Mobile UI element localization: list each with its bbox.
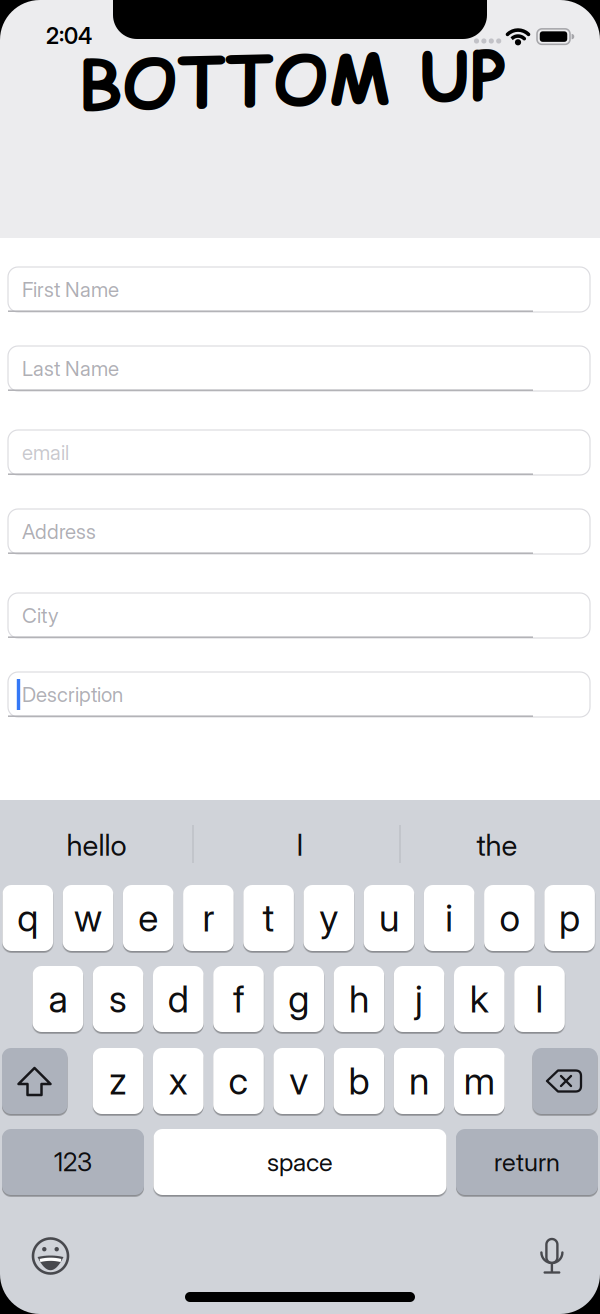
staticText: r [202, 895, 214, 941]
button[interactable]: l [514, 966, 565, 1032]
staticText: v [289, 1058, 308, 1104]
staticText: x [169, 1058, 188, 1104]
staticText: email [22, 440, 69, 465]
staticText: 2:04 [46, 23, 92, 49]
staticText: g [288, 976, 309, 1022]
staticText: j [415, 976, 423, 1022]
staticText: I [296, 827, 303, 863]
button[interactable]: f [213, 966, 264, 1032]
button[interactable]: u [364, 885, 414, 951]
button[interactable]: w [63, 885, 113, 951]
staticText: u [379, 895, 399, 941]
button[interactable]: City [8, 593, 590, 638]
button[interactable]: y [303, 885, 354, 951]
staticText: 123 [54, 1147, 92, 1177]
button[interactable]: Emoji [25, 1230, 76, 1281]
button[interactable]: p [544, 885, 595, 951]
staticText: c [228, 1058, 248, 1104]
button[interactable]: Last Name [8, 346, 590, 391]
button[interactable]: d [153, 966, 204, 1032]
staticText: a [48, 976, 67, 1022]
button[interactable]: Delete [532, 1048, 597, 1114]
staticText: City [22, 603, 59, 628]
staticText: h [349, 976, 369, 1022]
staticText: q [17, 895, 38, 941]
button[interactable]: Shift [2, 1048, 67, 1114]
staticText: Last Name [22, 356, 119, 381]
button[interactable]: k [454, 966, 505, 1032]
button[interactable]: I [205, 810, 395, 880]
button[interactable]: c [213, 1048, 264, 1114]
button[interactable]: x [153, 1048, 204, 1114]
staticText: w [74, 895, 102, 941]
button[interactable]: g [273, 966, 324, 1032]
staticText: s [109, 976, 127, 1022]
button[interactable]: hello [1, 810, 191, 880]
staticText: k [470, 976, 489, 1022]
staticText: space [267, 1147, 333, 1177]
staticText: d [168, 976, 189, 1022]
staticText: e [138, 895, 158, 941]
button[interactable]: First Name [8, 267, 590, 312]
button[interactable]: the [402, 810, 592, 880]
staticText: i [445, 895, 453, 941]
button[interactable]: i [424, 885, 474, 951]
staticText: n [409, 1058, 429, 1104]
button[interactable]: e [123, 885, 173, 951]
button[interactable]: r [183, 885, 234, 951]
button[interactable]: j [394, 966, 444, 1032]
button[interactable]: Address [8, 509, 590, 554]
staticText: f [233, 976, 244, 1022]
staticText: Description [22, 682, 123, 707]
staticText: First Name [22, 277, 119, 302]
staticText: z [109, 1058, 127, 1104]
button[interactable]: a [33, 966, 83, 1032]
staticText: hello [66, 827, 126, 863]
button[interactable]: 123 [2, 1129, 144, 1195]
button[interactable]: m [454, 1048, 505, 1114]
button[interactable]: q [2, 885, 53, 951]
button[interactable]: s [93, 966, 143, 1032]
button[interactable]: z [93, 1048, 143, 1114]
button[interactable]: v [273, 1048, 324, 1114]
button[interactable]: b [334, 1048, 384, 1114]
button[interactable]: email [8, 430, 590, 475]
staticText: the [476, 827, 517, 863]
button[interactable]: o [484, 885, 535, 951]
button[interactable]: Description [8, 672, 590, 717]
staticText: Address [22, 519, 96, 544]
button[interactable]: n [394, 1048, 444, 1114]
button[interactable]: t [243, 885, 294, 951]
button[interactable]: Dictate [526, 1233, 577, 1279]
staticText: m [464, 1058, 495, 1104]
staticText: y [319, 895, 338, 941]
button[interactable]: h [334, 966, 384, 1032]
staticText: BOTTOM UP [78, 32, 507, 128]
staticText: p [559, 895, 580, 941]
staticText: b [348, 1058, 369, 1104]
button[interactable]: space [153, 1129, 446, 1195]
staticText: o [499, 895, 519, 941]
staticText: return [494, 1147, 560, 1177]
staticText: l [535, 976, 543, 1022]
staticText: t [263, 895, 275, 941]
button[interactable]: return [456, 1129, 598, 1195]
